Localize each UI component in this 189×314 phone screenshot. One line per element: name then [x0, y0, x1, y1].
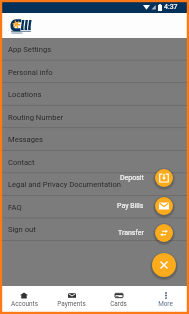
- button[interactable]: Contact: [0, 151, 189, 174]
- button[interactable]: Deposit: [155, 169, 173, 187]
- staticText: Cards: [110, 300, 127, 308]
- button[interactable]: Transfer: [155, 224, 173, 242]
- staticText: Messages: [8, 135, 43, 144]
- staticText: More: [158, 300, 173, 308]
- button[interactable]: Accounts: [0, 286, 48, 314]
- staticText: Personal info: [8, 68, 53, 77]
- button[interactable]: Messages: [0, 128, 189, 151]
- staticText: Accounts: [11, 300, 38, 308]
- button[interactable]: Pay Bills: [155, 197, 173, 215]
- button[interactable]: Personal info: [0, 61, 189, 84]
- staticText: FAQ: [8, 203, 22, 212]
- staticText: Pay Bills: [117, 202, 144, 210]
- staticText: 4:37: [164, 3, 178, 11]
- button[interactable]: Routing Number: [0, 106, 189, 129]
- staticText: Locations: [8, 90, 42, 99]
- button[interactable]: Sign out: [0, 218, 189, 241]
- button[interactable]: Legal and Privacy Documentation: [0, 173, 189, 196]
- staticText: Routing Number: [8, 113, 63, 122]
- staticText: Legal and Privacy Documentation: [8, 180, 121, 189]
- button[interactable]: Payments: [48, 286, 95, 314]
- button[interactable]: Cards: [95, 286, 142, 314]
- button[interactable]: More: [142, 286, 189, 314]
- button[interactable]: Locations: [0, 83, 189, 106]
- staticText: App Settings: [8, 45, 52, 54]
- staticText: Transfer: [118, 229, 144, 237]
- button[interactable]: FAQ: [0, 196, 189, 219]
- staticText: Deposit: [120, 174, 144, 182]
- button[interactable]: App Settings: [0, 38, 189, 61]
- staticText: Contact: [8, 158, 35, 167]
- button[interactable]: Close actions menu: [152, 253, 176, 277]
- staticText: Sign out: [8, 225, 36, 234]
- staticText: Payments: [57, 300, 86, 308]
